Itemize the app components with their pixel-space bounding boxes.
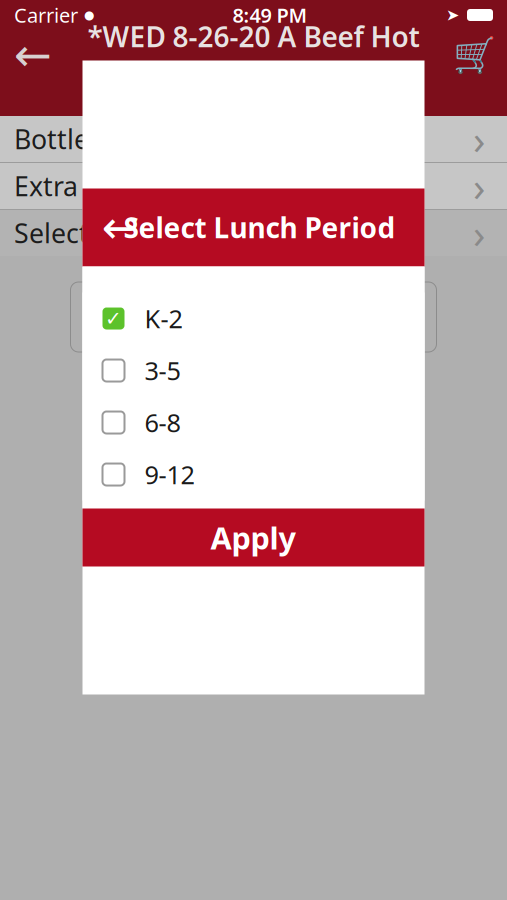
- staticText: ←: [14, 29, 52, 81]
- button[interactable]: Extra Entree: [0, 163, 507, 209]
- button[interactable]: Bottled Water: [0, 116, 507, 162]
- button[interactable]: Apply: [82, 508, 424, 566]
- staticText: ↩: [101, 202, 139, 253]
- staticText: 🛒: [452, 35, 495, 75]
- staticText: ›: [473, 206, 485, 259]
- staticText: Carrier: [14, 2, 78, 28]
- button[interactable]: ✓: [82, 292, 424, 344]
- staticText: 8:49 PM: [232, 2, 307, 28]
- staticText: ✓: [105, 307, 122, 330]
- staticText: *WED 8-26-20 A Beef Hot dog*: [87, 18, 419, 92]
- staticText: 6-8: [144, 406, 180, 439]
- staticText: ➤: [446, 6, 459, 24]
- staticText: ›: [473, 159, 485, 212]
- button[interactable]: Select Lunch Period: [0, 210, 507, 256]
- button[interactable]: Cart: [447, 32, 501, 78]
- button[interactable]: 9-12: [82, 448, 424, 500]
- staticText: 3-5: [144, 354, 180, 387]
- staticText: ›: [473, 112, 485, 165]
- staticText: K-2: [144, 302, 182, 335]
- staticText: 9-12: [144, 458, 194, 491]
- staticText: Select Lunch Period: [14, 215, 259, 251]
- staticText: Select Lunch Period: [123, 209, 395, 246]
- staticText: Apply: [210, 517, 296, 558]
- button[interactable]: 6-8: [82, 396, 424, 448]
- button[interactable]: Back: [94, 201, 146, 253]
- button[interactable]: 3-5: [82, 344, 424, 396]
- staticText: Bottled Water: [14, 121, 187, 157]
- staticText: Extra Entree: [14, 168, 166, 204]
- staticText: ●: [84, 8, 94, 22]
- button[interactable]: Back: [6, 32, 60, 78]
